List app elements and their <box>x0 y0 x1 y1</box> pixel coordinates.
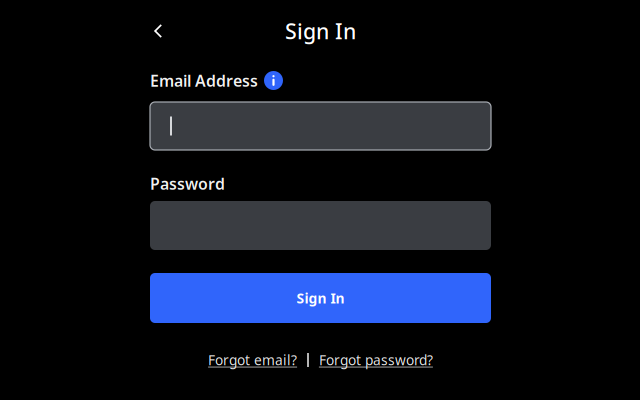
staticText: Forgot password? <box>319 351 433 369</box>
button[interactable]: Back <box>150 18 180 44</box>
staticText: Email Address <box>150 70 258 91</box>
button[interactable]: Sign In <box>150 273 491 323</box>
staticText: Sign In <box>285 16 356 46</box>
staticText: Forgot email? <box>208 351 297 369</box>
staticText: Password <box>150 173 225 194</box>
button[interactable]: Forgot email? <box>208 351 297 369</box>
button[interactable]: Forgot password? <box>319 351 433 369</box>
staticText: Sign In <box>296 289 344 307</box>
